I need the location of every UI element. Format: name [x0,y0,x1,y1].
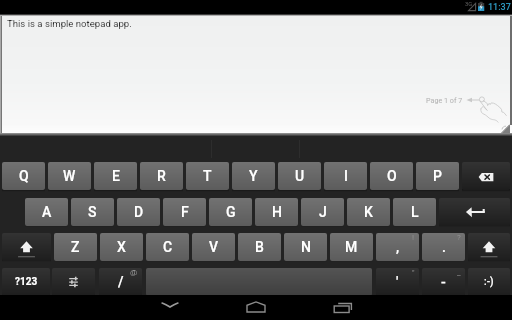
button[interactable]: . [422,233,465,261]
button[interactable]: W [48,162,91,190]
staticText: V [209,239,219,255]
button[interactable]: N [284,233,327,261]
button[interactable]: :-) [468,268,510,296]
staticText: N [301,239,311,255]
staticText: 3G [465,1,473,8]
button[interactable]: , [376,233,419,261]
button[interactable]: F [163,198,206,226]
staticText: U [295,168,305,184]
staticText: A [42,204,52,220]
button[interactable]: Enter [439,198,510,226]
button[interactable]: Y [232,162,275,190]
button[interactable]: O [370,162,413,190]
staticText: , [396,239,400,255]
staticText: K [364,204,373,220]
staticText: L [411,204,419,220]
staticText: :-) [484,276,494,288]
button[interactable]: Change input method [52,268,95,296]
staticText: @ [130,268,138,277]
button[interactable]: Backspace [462,162,510,190]
staticText: Y [249,168,258,184]
button[interactable]: ' [376,268,419,296]
staticText: / [118,274,124,290]
staticText: S [88,204,97,220]
button[interactable]: L [393,198,436,226]
button[interactable]: B [238,233,281,261]
staticText: T [203,168,212,184]
staticText: J [319,204,327,220]
staticText: H [272,204,282,220]
button[interactable]: E [94,162,137,190]
button[interactable]: Q [2,162,45,190]
button[interactable]: ?123 [2,268,50,296]
staticText: This is a simple notepad app. [7,18,132,29]
staticText: M [345,239,358,255]
staticText: ! [412,233,415,242]
staticText: O [387,168,397,184]
button[interactable]: Shift [2,233,51,261]
staticText: Z [71,239,80,255]
staticText: D [134,204,144,220]
staticText: B [255,239,264,255]
staticText: ?123 [15,276,38,288]
staticText: . [442,239,446,255]
staticText: F [181,204,189,220]
staticText: Page 1 of 7 [426,96,463,104]
button[interactable]: / [99,268,142,296]
button[interactable]: S [71,198,114,226]
button[interactable]: H [255,198,298,226]
staticText: E [112,168,120,184]
button[interactable]: Home [238,296,274,320]
button[interactable]: - [422,268,465,296]
button[interactable]: G [209,198,252,226]
button[interactable]: K [347,198,390,226]
button[interactable]: T [186,162,229,190]
staticText: C [163,239,173,255]
button[interactable]: V [192,233,235,261]
staticText: R [157,168,166,184]
staticText: - [441,274,446,290]
button[interactable]: R [140,162,183,190]
button[interactable]: U [278,162,321,190]
button[interactable]: I [324,162,367,190]
staticText: I [344,168,348,184]
button[interactable]: A [25,198,68,226]
staticText: " [412,268,415,277]
staticText: P [433,168,442,184]
staticText: ' [396,274,399,290]
button[interactable]: D [117,198,160,226]
staticText: X [117,239,126,255]
button[interactable]: M [330,233,373,261]
button[interactable]: Z [54,233,97,261]
button[interactable]: Space [146,268,372,296]
button[interactable]: C [146,233,189,261]
staticText: G [226,204,236,220]
button[interactable]: X [100,233,143,261]
staticText: Q [19,168,29,184]
button[interactable]: J [301,198,344,226]
staticText: W [63,168,76,184]
button[interactable]: Hide keyboard [152,296,188,320]
staticText: _ [457,268,461,277]
button[interactable]: Recent apps [325,296,361,320]
button[interactable]: P [416,162,459,190]
staticText: ? [457,233,461,242]
button[interactable]: Shift [468,233,510,261]
staticText: 11:37 [488,2,511,13]
